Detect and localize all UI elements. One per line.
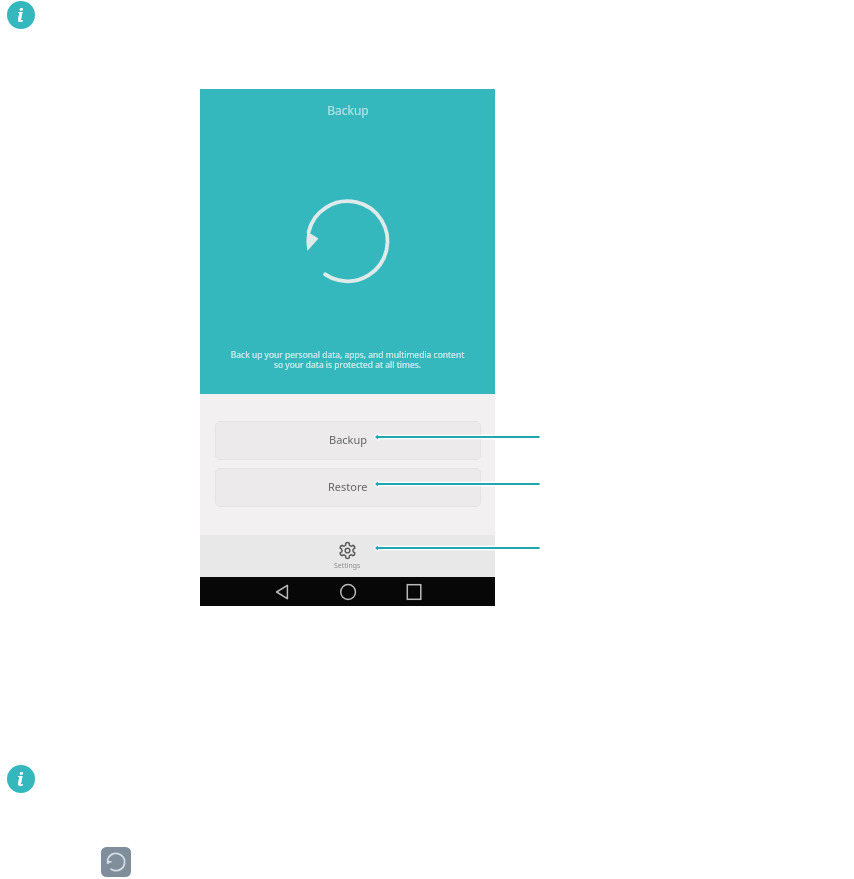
button[interactable]: Restore bbox=[215, 468, 481, 507]
button[interactable]: Settings bbox=[308, 535, 387, 576]
other: Home bbox=[338, 582, 358, 602]
other: Back bbox=[272, 582, 292, 602]
other: Recents bbox=[404, 582, 424, 602]
staticText: Backup bbox=[327, 102, 369, 118]
staticText: i bbox=[17, 767, 24, 792]
staticText: Settings bbox=[334, 561, 361, 570]
staticText: Backup bbox=[329, 432, 368, 447]
button[interactable]: Information bbox=[7, 765, 35, 793]
button[interactable]: Information bbox=[7, 1, 35, 29]
button[interactable]: Backup bbox=[215, 421, 481, 460]
staticText: Restore bbox=[328, 479, 368, 494]
staticText: Back up your personal data, apps, and mu… bbox=[200, 349, 495, 371]
button[interactable]: Backup app icon bbox=[101, 847, 131, 877]
staticText: i bbox=[17, 3, 24, 28]
